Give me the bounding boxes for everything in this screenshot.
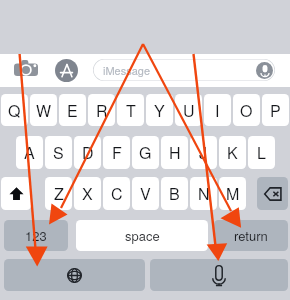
button[interactable]: O (233, 94, 260, 126)
staticText: I (215, 99, 220, 122)
button[interactable]: C (103, 177, 130, 210)
button[interactable]: Next keyboard (4, 259, 145, 291)
staticText: E (67, 99, 78, 122)
button[interactable]: D (74, 136, 101, 169)
button[interactable]: Camera (14, 60, 38, 76)
staticText: D (82, 141, 94, 164)
button[interactable]: App Store (55, 59, 78, 82)
button[interactable]: L (248, 136, 275, 169)
button[interactable]: S (45, 136, 72, 169)
button[interactable]: M (219, 177, 246, 210)
button[interactable]: iMessage (93, 59, 275, 81)
staticText: A (24, 141, 35, 164)
button[interactable]: Backspace (257, 177, 288, 210)
button[interactable]: P (262, 94, 289, 126)
button[interactable]: X (74, 177, 101, 210)
button[interactable]: Y (146, 94, 173, 126)
staticText: M (226, 182, 240, 205)
staticText: T (126, 99, 136, 122)
button[interactable]: R (88, 94, 115, 126)
button[interactable]: Dictate (150, 259, 288, 291)
button[interactable]: B (161, 177, 188, 210)
button[interactable]: G (132, 136, 159, 169)
staticText: G (139, 141, 152, 164)
staticText: Z (54, 182, 64, 205)
button[interactable]: J (190, 136, 217, 169)
staticText: S (53, 141, 64, 164)
staticText: L (257, 141, 266, 164)
button[interactable]: V (132, 177, 159, 210)
button[interactable]: N (190, 177, 217, 210)
staticText: V (140, 182, 151, 205)
button[interactable]: Z (45, 177, 72, 210)
staticText: J (199, 141, 208, 164)
staticText: W (36, 99, 52, 122)
button[interactable]: return (214, 220, 288, 251)
button[interactable]: space (76, 220, 208, 251)
button[interactable]: E (59, 94, 86, 126)
staticText: Q (8, 99, 21, 122)
button[interactable]: Q (1, 94, 28, 126)
staticText: U (183, 99, 195, 122)
staticText: R (96, 99, 108, 122)
staticText: C (111, 182, 123, 205)
button[interactable]: A (16, 136, 43, 169)
staticText: H (169, 141, 181, 164)
button[interactable]: T (117, 94, 144, 126)
staticText: P (270, 99, 281, 122)
staticText: B (169, 182, 180, 205)
button[interactable]: Dictate (256, 62, 273, 79)
staticText: O (240, 99, 253, 122)
button[interactable]: F (103, 136, 130, 169)
staticText: iMessage (103, 62, 151, 78)
staticText: X (82, 182, 93, 205)
button[interactable]: W (30, 94, 57, 126)
button[interactable]: K (219, 136, 246, 169)
button[interactable]: H (161, 136, 188, 169)
staticText: Y (154, 99, 165, 122)
staticText: space (125, 226, 160, 245)
button[interactable]: Shift (1, 177, 31, 210)
button[interactable]: U (175, 94, 202, 126)
staticText: 123 (25, 226, 47, 245)
staticText: K (227, 141, 238, 164)
staticText: N (198, 182, 210, 205)
button[interactable]: I (204, 94, 231, 126)
staticText: return (234, 226, 268, 245)
button[interactable]: 123 (4, 220, 68, 251)
staticText: F (112, 141, 122, 164)
